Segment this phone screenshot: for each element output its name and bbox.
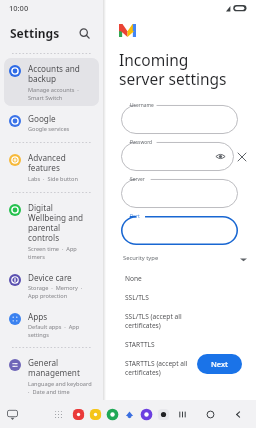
staticText: Digital Wellbeing and parental controls <box>28 202 93 244</box>
button[interactable]: STARTTLS (accept all certificates) <box>117 354 214 382</box>
button[interactable]: Hide keyboard <box>6 408 19 421</box>
staticText: Security type <box>123 254 159 262</box>
button[interactable]: App <box>140 408 153 421</box>
button[interactable]: Clear password <box>234 149 250 165</box>
button[interactable]: Search settings <box>75 24 93 42</box>
button[interactable]: Server <box>121 179 238 208</box>
button[interactable]: SSL/TLS (accept all certificates) <box>117 307 214 335</box>
button[interactable]: Apps <box>4 306 99 343</box>
staticText: Screen time · App timers <box>28 245 93 260</box>
button[interactable]: App <box>123 408 136 421</box>
button[interactable]: Digital Wellbeing and parental controls <box>4 197 99 265</box>
button[interactable]: General management <box>4 352 99 399</box>
staticText: Port <box>130 213 140 220</box>
staticText: General management <box>28 357 93 379</box>
button[interactable]: Port <box>121 216 238 245</box>
button[interactable]: Accounts and backup <box>4 58 99 106</box>
button[interactable]: App <box>106 408 119 421</box>
button[interactable]: App <box>157 408 170 421</box>
staticText: Apps <box>28 311 48 322</box>
button[interactable]: Next <box>197 354 242 374</box>
staticText: Username <box>130 102 154 109</box>
button[interactable]: App <box>72 408 85 421</box>
button[interactable]: Recent apps <box>174 406 190 422</box>
button[interactable]: Device care <box>4 267 99 304</box>
staticText: Device care <box>28 272 72 283</box>
staticText: Password <box>130 139 153 146</box>
button[interactable]: Username <box>121 105 238 134</box>
button[interactable]: All apps <box>53 409 64 420</box>
staticText: Settings <box>10 25 60 41</box>
button[interactable]: Advanced features <box>4 147 99 188</box>
staticText: Accounts and backup <box>28 63 93 85</box>
staticText: STARTTLS (accept all certificates) <box>125 359 206 377</box>
button[interactable]: Password <box>121 142 234 171</box>
button[interactable]: App <box>89 408 102 421</box>
button[interactable]: SSL/TLS <box>117 288 214 307</box>
staticText: STARTTLS <box>125 340 155 349</box>
staticText: Google <box>28 113 56 124</box>
staticText: 10:00 <box>9 3 29 13</box>
staticText: Manage accounts · Smart Switch <box>28 86 93 101</box>
button[interactable]: Back <box>230 406 246 422</box>
staticText: SSL/TLS <box>125 293 149 302</box>
staticText: Server <box>130 176 145 183</box>
staticText: Google services <box>28 125 70 133</box>
staticText: SSL/TLS (accept all certificates) <box>125 312 206 330</box>
staticText: Incoming server settings <box>119 49 234 89</box>
button[interactable]: Show password <box>215 151 226 162</box>
button[interactable]: Google <box>4 108 99 138</box>
staticText: None <box>125 274 142 283</box>
staticText: Advanced features <box>28 152 93 174</box>
staticText: Language and keyboard · Date and time <box>28 380 93 394</box>
staticText: Next <box>211 359 228 369</box>
staticText: Storage · Memory · App protection <box>28 284 93 299</box>
staticText: Labs · Side button <box>28 175 78 183</box>
button[interactable]: None <box>117 269 214 288</box>
staticText: Default apps · App settings <box>28 323 93 338</box>
button[interactable]: Home <box>202 406 218 422</box>
button[interactable]: Expand security type <box>238 254 248 264</box>
button[interactable]: STARTTLS <box>117 335 214 354</box>
